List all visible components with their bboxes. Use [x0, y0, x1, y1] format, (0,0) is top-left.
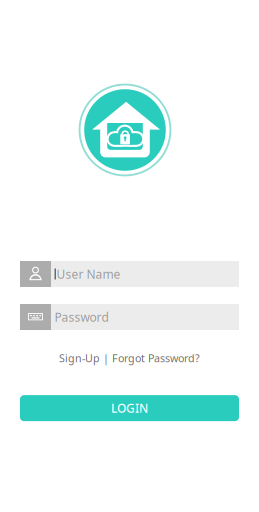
button[interactable]: LOGIN	[20, 395, 239, 421]
staticText: |	[100, 351, 112, 365]
staticText: Sign-Up	[59, 351, 100, 365]
staticText: LOGIN	[111, 400, 148, 416]
staticText: Forgot Password?	[112, 351, 200, 365]
staticText: User Name	[56, 266, 120, 282]
button[interactable]: Password	[20, 304, 239, 330]
button[interactable]: Sign-Up	[59, 351, 100, 365]
button[interactable]: User Name	[20, 261, 239, 287]
button[interactable]: Forgot Password?	[112, 351, 200, 365]
staticText: Password	[55, 309, 109, 325]
